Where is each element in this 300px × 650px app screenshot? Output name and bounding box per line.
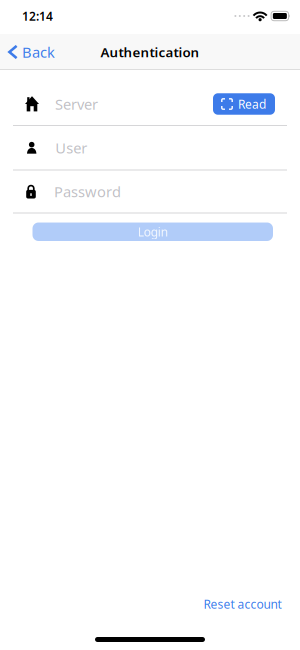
button[interactable]: Back [0, 42, 55, 62]
button[interactable]: Read [213, 93, 275, 115]
staticText: Login [138, 224, 168, 240]
button[interactable]: Reset account [203, 596, 281, 612]
staticText: User [55, 138, 87, 157]
staticText: Back [22, 42, 55, 62]
staticText: Password [54, 182, 121, 201]
staticText: Authentication [100, 43, 199, 61]
staticText: Read [238, 96, 266, 112]
staticText: 12:14 [22, 8, 53, 24]
button[interactable]: Login [32, 222, 273, 241]
staticText: Reset account [203, 596, 281, 612]
staticText: Server [55, 94, 98, 114]
